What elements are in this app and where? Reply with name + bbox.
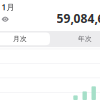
staticText: 1月 bbox=[1, 2, 14, 12]
button[interactable]: 月次 bbox=[0, 32, 50, 45]
staticText: 59,084,6 bbox=[56, 10, 100, 26]
button[interactable]: 年次 bbox=[65, 32, 100, 45]
staticText: 年次 bbox=[78, 35, 92, 43]
button[interactable]: 残高の表示を切り替え bbox=[1, 14, 13, 24]
staticText: 月次 bbox=[13, 35, 27, 43]
